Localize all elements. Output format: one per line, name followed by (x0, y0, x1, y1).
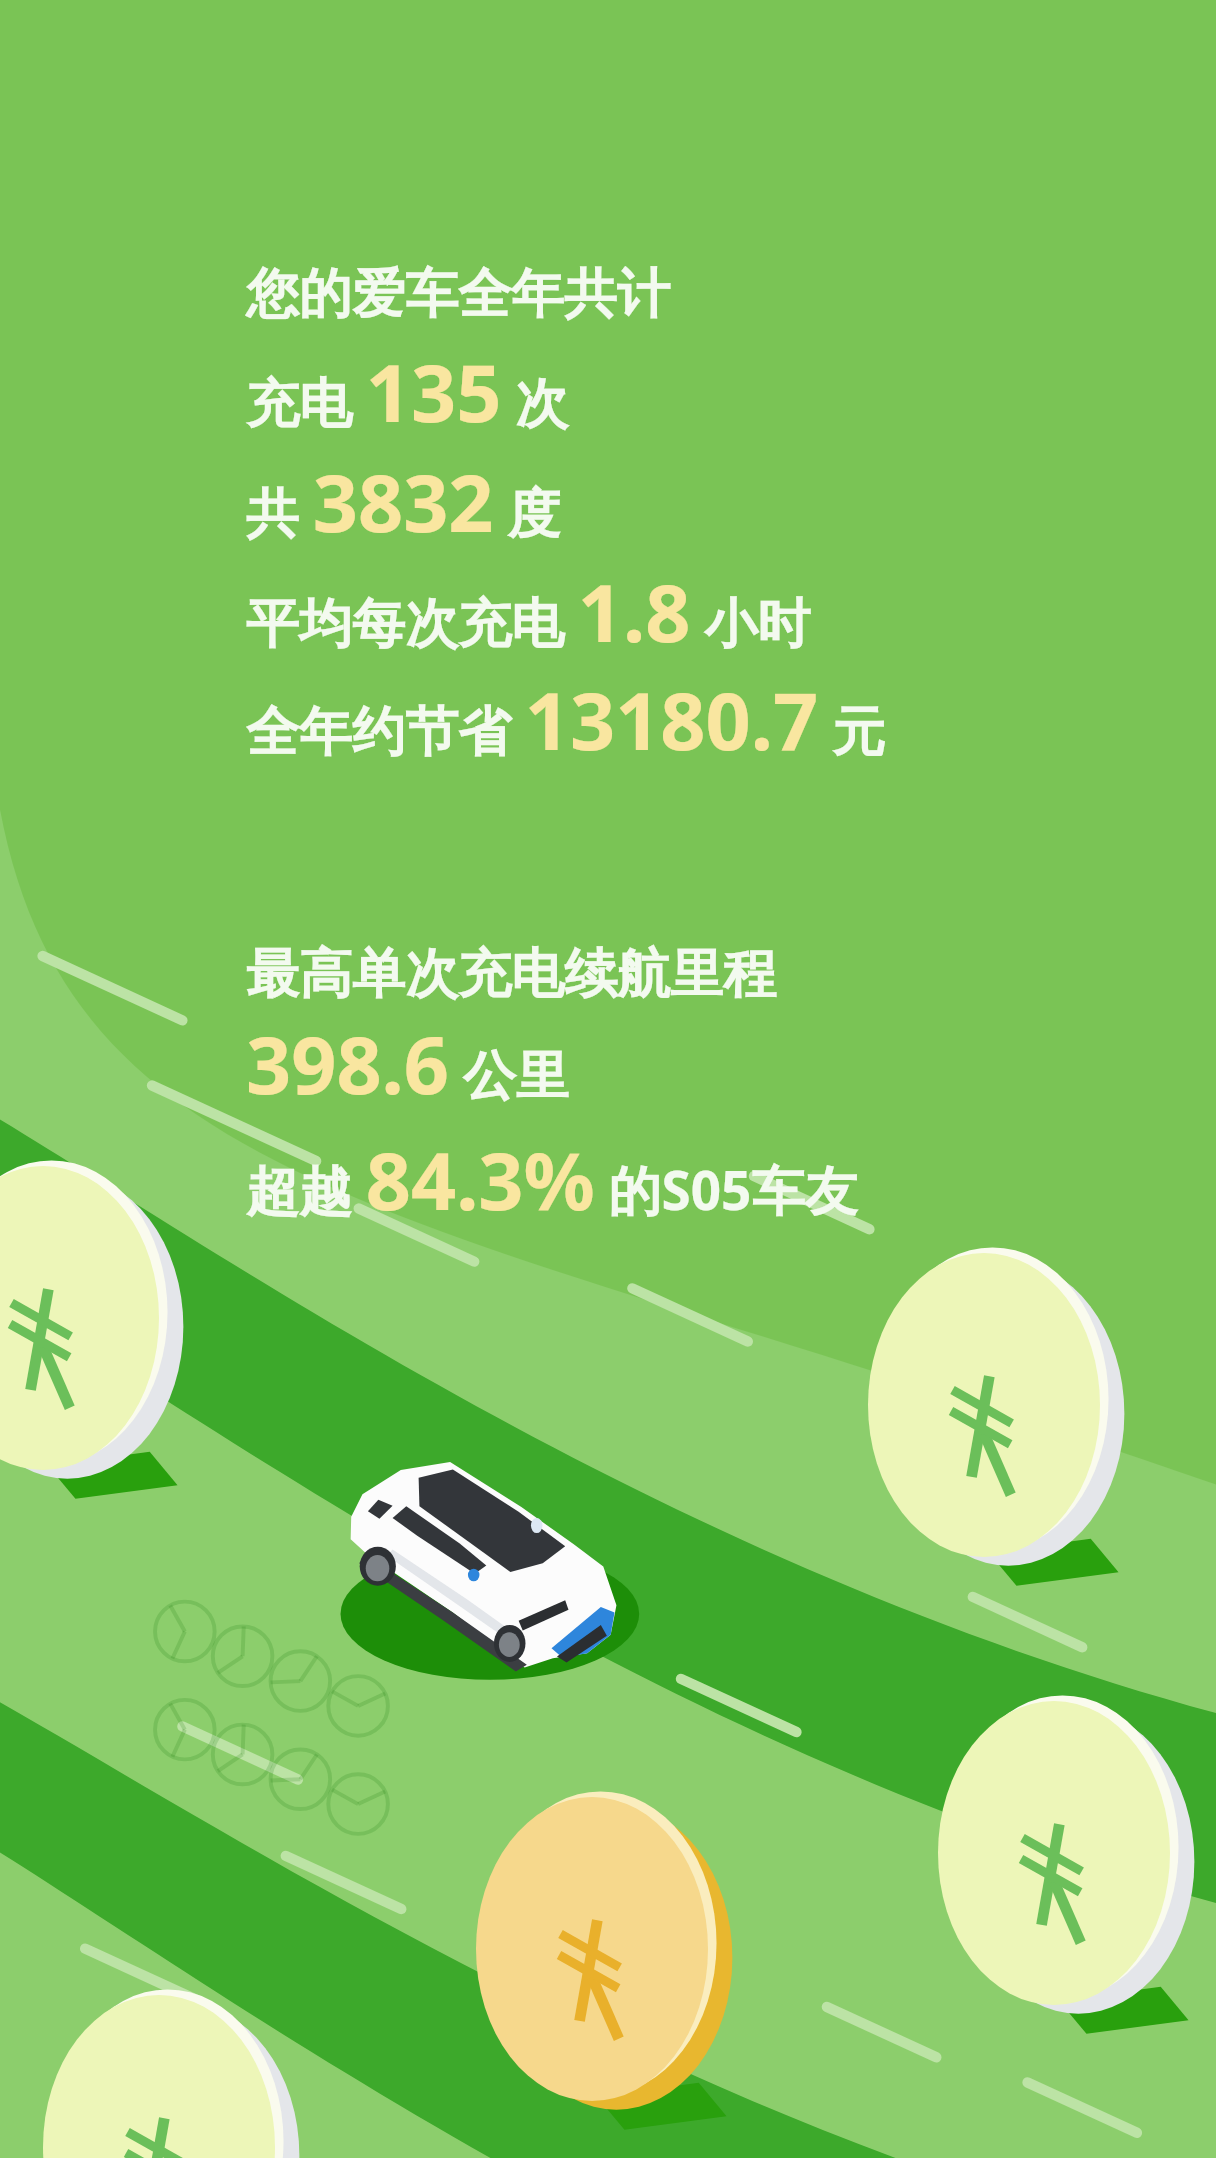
staticText: 平均每次充电 1.8 小时 (246, 558, 811, 666)
staticText: 最高单次充电续航里程 (246, 941, 776, 1008)
staticText: 超越 84.3% 的S05车友 (246, 1126, 858, 1234)
staticText: 共 3832 度 (246, 448, 561, 556)
staticText: 您的爱车全年共计 (246, 261, 670, 328)
staticText: 充电 135 次 (246, 338, 569, 446)
staticText: 全年约节省 13180.7 元 (246, 666, 885, 774)
staticText: 398.6 公里 (246, 1010, 569, 1118)
